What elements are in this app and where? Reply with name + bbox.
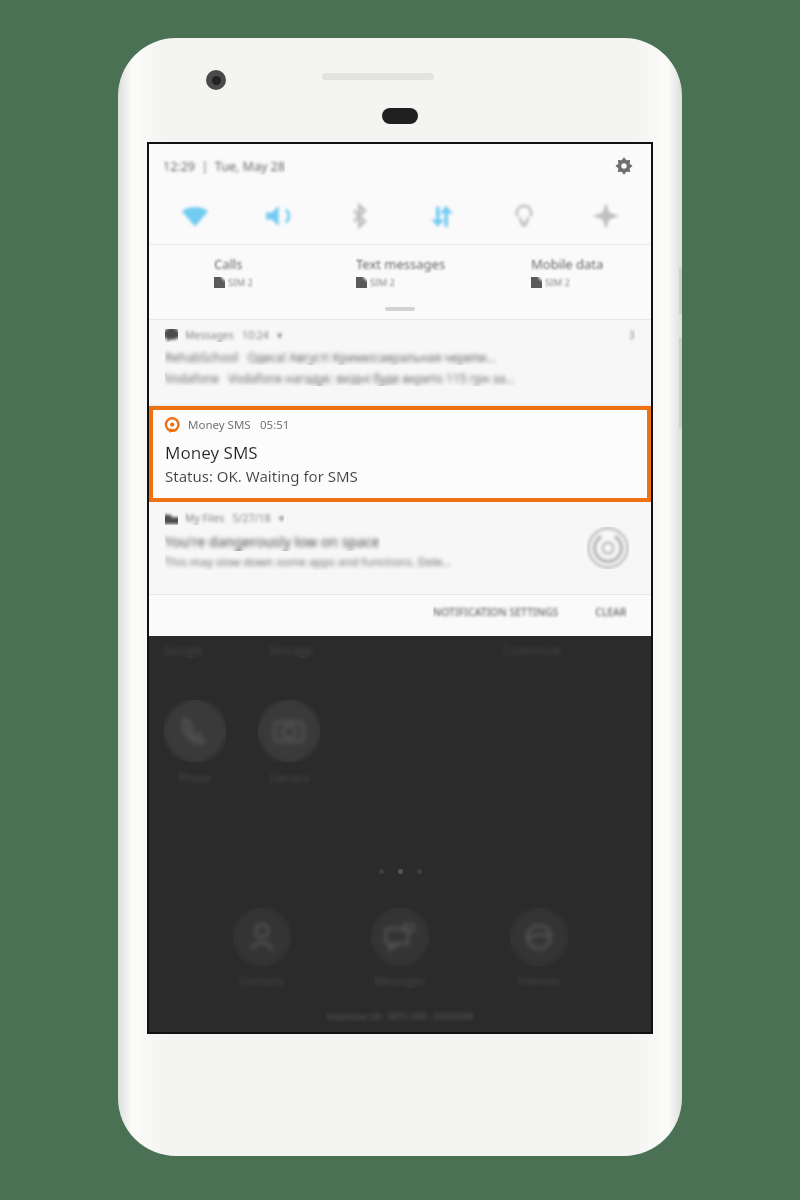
button[interactable]: Wi-Fi bbox=[153, 188, 236, 244]
staticText: NOTIFICATION SETTINGS bbox=[433, 605, 559, 619]
staticText: CLEAR bbox=[595, 605, 627, 619]
button[interactable]: My Files 5/27/18 ▾ bbox=[149, 502, 651, 594]
button[interactable]: Settings bbox=[611, 153, 637, 179]
staticText: Storage bbox=[269, 642, 313, 658]
button[interactable]: Contacts bbox=[222, 908, 302, 988]
staticText: 12:29 | Tue, May 28 bbox=[163, 158, 285, 175]
staticText: SIM 2 bbox=[370, 276, 395, 289]
button[interactable]: Phone bbox=[163, 700, 227, 785]
staticText: My Files 5/27/18 ▾ bbox=[185, 511, 284, 525]
staticText: Phone bbox=[178, 770, 212, 785]
staticText: RehabSchool Одеса! Августі Кримкісаераль… bbox=[165, 349, 497, 365]
button[interactable]: Mobile data bbox=[401, 188, 483, 244]
staticText: Calls bbox=[214, 255, 243, 273]
button[interactable]: NOTIFICATION SETTINGS bbox=[425, 601, 567, 623]
staticText: SIM 2 bbox=[545, 276, 570, 289]
button[interactable]: Calls bbox=[149, 245, 317, 299]
button[interactable]: Collapse panel bbox=[149, 299, 651, 319]
button[interactable]: CLEAR bbox=[587, 601, 635, 623]
button[interactable]: Auto rotate bbox=[565, 188, 647, 244]
staticText: Vodafone Vodafone нагадує: вхідні буде в… bbox=[165, 370, 516, 386]
button[interactable]: Internet bbox=[499, 908, 579, 988]
button[interactable]: Money SMS bbox=[149, 406, 651, 502]
staticText: Status: OK. Waiting for SMS bbox=[165, 466, 358, 486]
staticText: Vodafone UA , MTS UKR , KYIVSTAR bbox=[326, 1010, 474, 1022]
button[interactable]: Bluetooth bbox=[319, 188, 401, 244]
staticText: This may slow down some apps and functio… bbox=[165, 554, 452, 570]
staticText: Google bbox=[163, 642, 204, 658]
button[interactable]: Messages 10:24 ▾ bbox=[149, 320, 651, 405]
staticText: Money SMS bbox=[188, 417, 251, 433]
button[interactable]: Flashlight bbox=[483, 188, 565, 244]
staticText: Messages bbox=[374, 973, 426, 988]
button[interactable]: Messages bbox=[360, 908, 440, 988]
staticText: Mobile data bbox=[531, 255, 604, 273]
button[interactable]: Sound bbox=[236, 188, 319, 244]
button[interactable]: Text messages bbox=[317, 245, 484, 299]
staticText: Internet bbox=[518, 973, 561, 988]
button[interactable]: Camera bbox=[257, 700, 321, 785]
staticText: SIM 2 bbox=[228, 276, 253, 289]
staticText: 3 bbox=[629, 328, 635, 342]
staticText: Money SMS bbox=[165, 441, 258, 464]
button[interactable]: Mobile data bbox=[484, 245, 651, 299]
staticText: You're dangerously low on space bbox=[165, 532, 380, 551]
staticText: Text messages bbox=[356, 255, 446, 273]
staticText: Messages 10:24 ▾ bbox=[185, 328, 283, 342]
staticText: 05:51 bbox=[260, 417, 290, 433]
